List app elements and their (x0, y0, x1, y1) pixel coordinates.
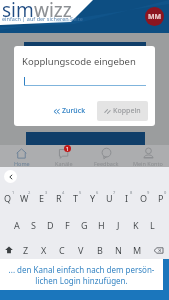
button[interactable]: T (67, 189, 84, 207)
button[interactable]: I (118, 189, 135, 207)
staticText: Zurück (62, 106, 86, 116)
button[interactable]: X (35, 241, 53, 259)
staticText: Mein Konto (133, 160, 163, 167)
button[interactable]: D (42, 216, 59, 234)
button[interactable]: N (109, 241, 128, 259)
button[interactable]: E (33, 189, 50, 207)
staticText: X (41, 244, 47, 256)
staticText: 7 (113, 190, 116, 195)
staticText: Kanäle (55, 160, 73, 167)
staticText: MM (148, 12, 162, 22)
staticText: ... den Kanal einfach nach dem persön- l… (0, 264, 163, 286)
staticText: sim (2, 0, 34, 23)
staticText: B (97, 244, 103, 256)
button[interactable]: B (90, 241, 109, 259)
staticText: 1 (12, 190, 15, 195)
staticText: M (133, 244, 142, 256)
button[interactable]: Mein Konto (127, 145, 169, 167)
staticText: A (14, 219, 20, 231)
button[interactable]: R (50, 189, 67, 207)
button[interactable]: Koppeln (97, 101, 148, 121)
staticText: Q (4, 192, 12, 204)
staticText: V (78, 244, 84, 256)
staticText: 2 (28, 190, 31, 195)
staticText: 5 (79, 190, 82, 195)
button[interactable]: W (16, 189, 33, 207)
staticText: O (140, 192, 148, 204)
button[interactable]: V (71, 241, 90, 259)
staticText: einfach | auf der sicheren Seite (2, 15, 83, 22)
button[interactable]: A (8, 216, 25, 234)
staticText: Kopplungscode eingeben (22, 55, 136, 68)
button[interactable]: Zurück (49, 102, 90, 120)
staticText: Home (14, 160, 30, 167)
staticText: R (56, 192, 62, 204)
button[interactable]: P (152, 189, 169, 207)
button[interactable]: Y (84, 189, 101, 207)
staticText: E (39, 192, 45, 204)
button[interactable]: Back (4, 170, 17, 183)
staticText: U (106, 192, 113, 204)
staticText: L (150, 219, 155, 231)
button[interactable]: Q (0, 189, 16, 207)
staticText: P (158, 192, 164, 204)
button[interactable]: J (110, 216, 127, 234)
staticText: 1 (66, 146, 69, 152)
button[interactable]: Z (17, 241, 35, 259)
staticText: T (73, 192, 79, 204)
staticText: wizz (34, 0, 72, 23)
staticText: 9 (147, 190, 150, 195)
staticText: C (59, 244, 65, 256)
staticText: H (98, 219, 105, 231)
button[interactable]: H (93, 216, 110, 234)
staticText: I (125, 192, 129, 204)
button[interactable]: Home (0, 145, 43, 167)
staticText: 8 (130, 190, 133, 195)
button[interactable]: M (128, 241, 147, 259)
button[interactable]: 1 (43, 145, 85, 167)
staticText: Feedback (94, 160, 119, 167)
button[interactable]: O (135, 189, 152, 207)
staticText: D (47, 219, 54, 231)
staticText: Koppeln (113, 106, 141, 116)
staticText: N (115, 244, 122, 256)
staticText: K (133, 219, 139, 231)
button[interactable]: G (76, 216, 93, 234)
staticText: W (20, 192, 29, 204)
staticText: 0 (164, 190, 167, 195)
button[interactable]: Shift (0, 241, 17, 259)
button[interactable]: U (101, 189, 118, 207)
button[interactable]: L (144, 216, 161, 234)
staticText: 6 (96, 190, 99, 195)
button[interactable]: F (59, 216, 76, 234)
button[interactable]: Backspace (147, 241, 169, 259)
button[interactable]: C (53, 241, 71, 259)
staticText: G (81, 219, 88, 231)
button[interactable]: S (25, 216, 42, 234)
staticText: 4 (62, 190, 65, 195)
staticText: J (117, 219, 120, 231)
button[interactable]: MM (145, 7, 164, 26)
staticText: F (65, 219, 70, 231)
staticText: 3 (45, 190, 48, 195)
button[interactable]: Feedback (85, 145, 127, 167)
staticText: Z (23, 244, 29, 256)
staticText: Y (90, 192, 96, 204)
staticText: S (31, 219, 36, 231)
button[interactable]: K (127, 216, 144, 234)
